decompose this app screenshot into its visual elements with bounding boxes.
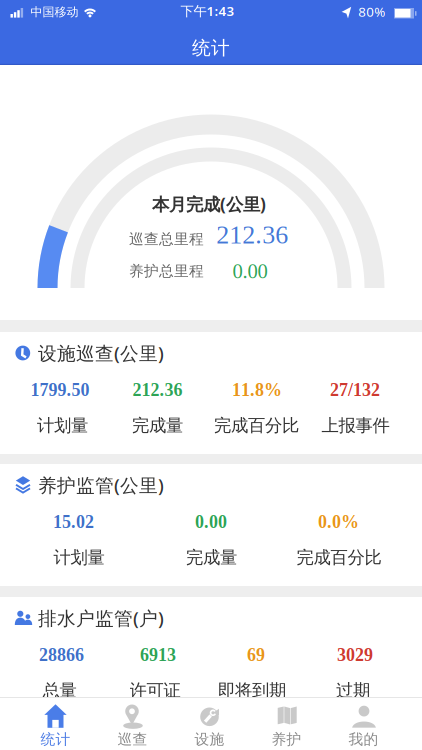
staticText: 设施 <box>194 730 224 748</box>
staticText: 养护监管(公里) <box>38 473 164 497</box>
button[interactable]: 统计 <box>17 698 94 750</box>
button[interactable]: 巡查 <box>94 698 171 750</box>
staticText: 养护 <box>271 730 301 748</box>
staticText: 过期 <box>336 680 370 701</box>
staticText: 69 <box>247 645 265 665</box>
staticText: 212.36 <box>216 220 288 249</box>
staticText: 完成量 <box>186 547 237 568</box>
staticText: 完成百分比 <box>296 547 381 568</box>
staticText: 1799.50 <box>30 380 89 400</box>
staticText: 即将到期 <box>218 680 286 701</box>
staticText: 许可证 <box>129 680 180 701</box>
staticText: 0.00 <box>232 260 267 283</box>
staticText: 完成量 <box>132 415 183 436</box>
staticText: 完成百分比 <box>214 415 299 436</box>
staticText: 28866 <box>39 645 84 665</box>
staticText: 0.0% <box>318 512 359 532</box>
staticText: 6913 <box>140 645 176 665</box>
staticText: 15.02 <box>53 512 94 532</box>
staticText: 巡查总里程 <box>129 230 204 248</box>
button[interactable]: 我的 <box>325 698 402 750</box>
staticText: 3029 <box>337 645 373 665</box>
button[interactable]: 设施 <box>171 698 248 750</box>
staticText: 27/132 <box>330 380 380 400</box>
staticText: 0.00 <box>195 512 227 532</box>
staticText: 排水户监管(户) <box>38 606 164 630</box>
staticText: 上报事件 <box>321 415 389 436</box>
staticText: 计划量 <box>53 547 104 568</box>
staticText: 巡查 <box>117 730 147 748</box>
staticText: 80% <box>358 3 385 20</box>
staticText: 11.8% <box>232 380 282 400</box>
staticText: 统计 <box>40 730 70 748</box>
staticText: 下午1:43 <box>180 2 234 20</box>
button[interactable]: 养护 <box>248 698 325 750</box>
staticText: 统计 <box>192 36 230 59</box>
staticText: 设施巡查(公里) <box>38 341 164 365</box>
staticText: 总量 <box>42 680 76 701</box>
staticText: 养护总里程 <box>129 262 204 280</box>
staticText: 我的 <box>348 730 378 748</box>
staticText: 本月完成(公里) <box>152 192 266 215</box>
staticText: 212.36 <box>132 380 182 400</box>
staticText: 计划量 <box>37 415 88 436</box>
staticText: 中国移动 <box>31 5 79 19</box>
